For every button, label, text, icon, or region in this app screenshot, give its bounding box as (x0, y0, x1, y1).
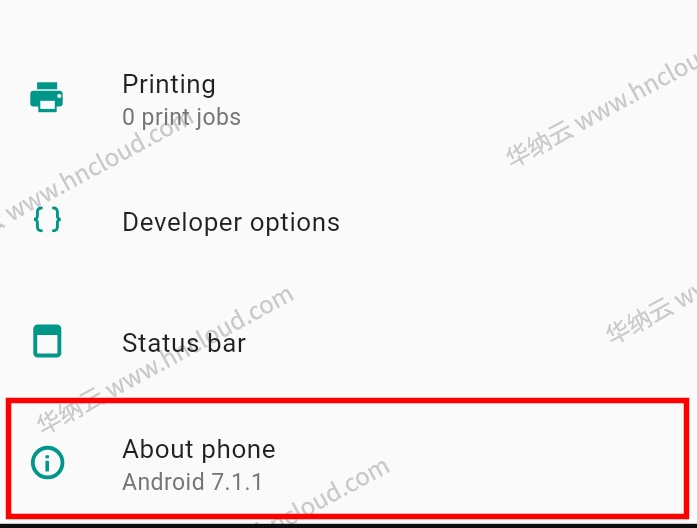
staticText: 华纳云 www.hncloud.com (0, 97, 199, 265)
staticText: 华纳云 www.hncloud.com (125, 446, 395, 528)
staticText: 华纳云 www.hncloud.com (598, 184, 697, 352)
staticText: 华纳云 www.hncloud.com (498, 7, 697, 175)
staticText: 华纳云 www.hncloud.com (29, 274, 299, 442)
button[interactable]: About phone (0, 401, 697, 523)
button[interactable]: Developer options (0, 158, 697, 280)
staticText: Printing (122, 69, 217, 99)
staticText: Developer options (122, 207, 341, 237)
staticText: About phone (122, 434, 277, 464)
button[interactable]: Status bar (0, 280, 697, 401)
staticText: Android 7.1.1 (122, 469, 265, 496)
staticText: 0 print jobs (122, 104, 242, 131)
staticText: Status bar (122, 328, 247, 358)
button[interactable]: Printing (0, 36, 697, 158)
